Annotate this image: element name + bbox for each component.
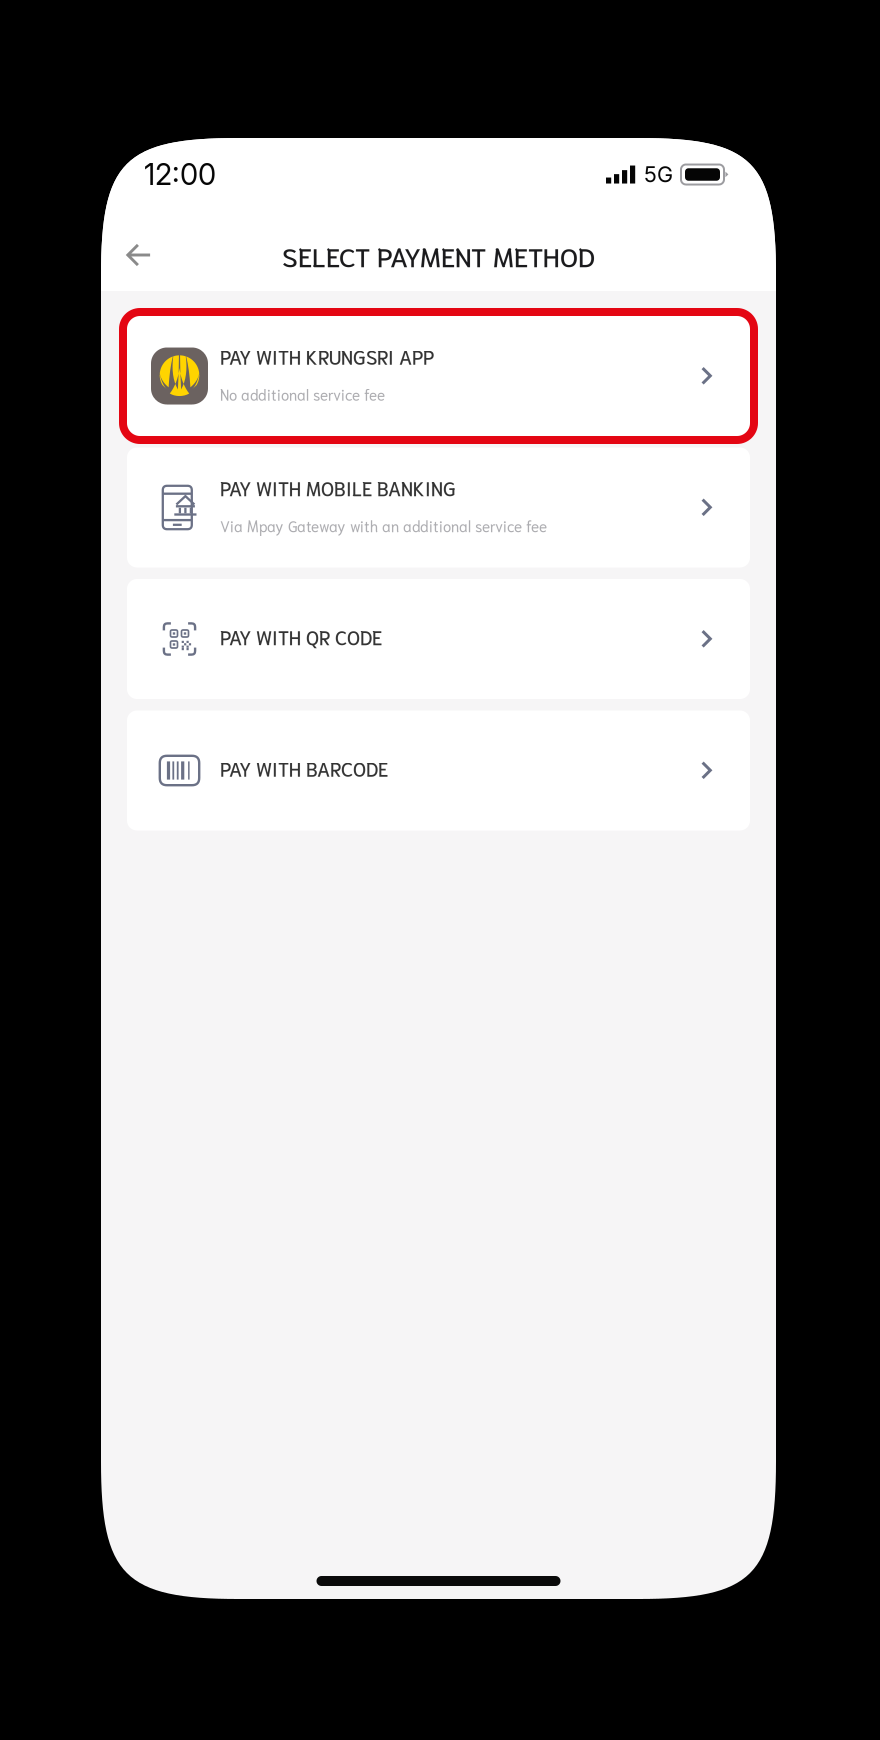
staticText: No additional service fee	[220, 384, 385, 404]
staticText: 12:00	[144, 157, 216, 192]
button[interactable]: PAY WITH BARCODE	[127, 710, 750, 830]
staticText: PAY WITH MOBILE BANKING	[220, 475, 456, 500]
button[interactable]: PAY WITH KRUNGSRI APP	[127, 316, 750, 436]
button[interactable]: PAY WITH QR CODE	[127, 579, 750, 699]
button[interactable]: Back	[111, 227, 167, 283]
staticText: SELECT PAYMENT METHOD	[282, 238, 595, 272]
staticText: PAY WITH BARCODE	[220, 755, 388, 780]
staticText: PAY WITH KRUNGSRI APP	[220, 343, 434, 368]
staticText: Via Mpay Gateway with an additional serv…	[220, 515, 547, 535]
staticText: 5G	[644, 161, 673, 187]
button[interactable]: PAY WITH MOBILE BANKING	[127, 447, 750, 567]
staticText: PAY WITH QR CODE	[220, 624, 382, 649]
